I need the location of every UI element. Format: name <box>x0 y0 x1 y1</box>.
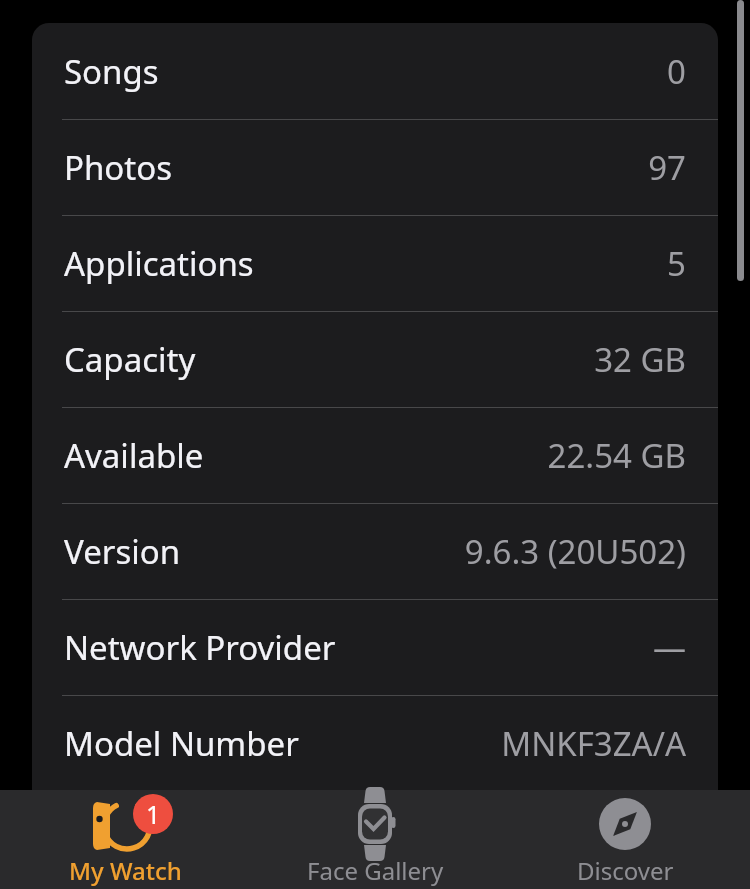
button[interactable]: Applications <box>32 215 718 311</box>
staticText: Model Number <box>64 721 299 766</box>
staticText: Network Provider <box>64 625 336 670</box>
staticText: 1 <box>146 797 161 831</box>
button[interactable]: Songs <box>32 23 718 119</box>
staticText: Available <box>64 433 204 478</box>
staticText: My Watch <box>69 854 182 887</box>
staticText: Face Gallery <box>307 854 444 887</box>
staticText: — <box>653 625 686 670</box>
button[interactable]: Discover <box>500 790 750 889</box>
button[interactable]: Model Number <box>32 695 718 791</box>
button[interactable]: Face Gallery <box>250 790 500 889</box>
staticText: Songs <box>64 49 159 94</box>
staticText: Photos <box>64 145 173 190</box>
button[interactable]: Capacity <box>32 311 718 407</box>
button[interactable]: Version <box>32 503 718 599</box>
staticText: 22.54 GB <box>547 433 686 478</box>
staticText: 5 <box>667 241 686 286</box>
button[interactable]: Photos <box>32 119 718 215</box>
staticText: 32 GB <box>594 337 686 382</box>
staticText: 0 <box>667 49 686 94</box>
staticText: Discover <box>577 854 674 887</box>
staticText: Version <box>64 529 181 574</box>
staticText: 97 <box>648 145 686 190</box>
staticText: MNKF3ZA/A <box>501 721 686 766</box>
staticText: 9.6.3 (20U502) <box>464 529 686 574</box>
staticText: Applications <box>64 241 254 286</box>
button[interactable]: Available <box>32 407 718 503</box>
button[interactable]: My Watch <box>0 790 250 889</box>
staticText: Capacity <box>64 337 196 382</box>
button[interactable]: Network Provider <box>32 599 718 695</box>
